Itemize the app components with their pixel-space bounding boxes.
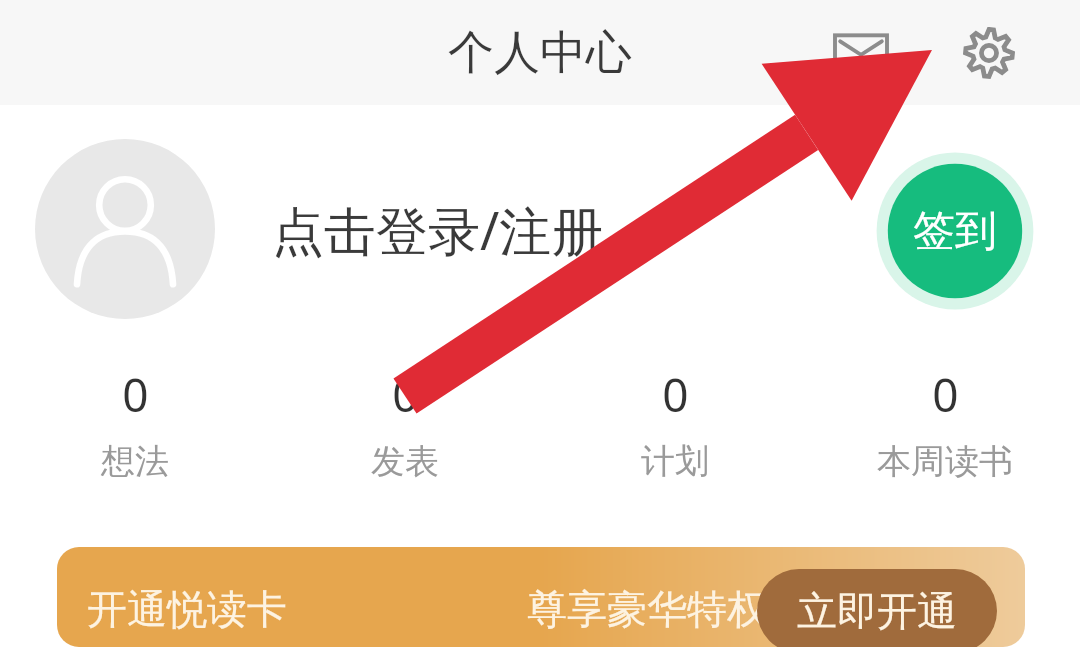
button[interactable]: 0	[270, 363, 540, 503]
button[interactable]: 0	[810, 363, 1080, 503]
staticText: 签到	[913, 205, 997, 258]
button[interactable]: Avatar	[35, 139, 215, 319]
staticText: 个人中心	[448, 24, 632, 82]
staticText: 想法	[101, 440, 169, 483]
staticText: 计划	[641, 440, 709, 483]
staticText: 立即开通	[797, 586, 957, 636]
staticText: 0	[392, 363, 419, 426]
button[interactable]: 开通悦读卡	[57, 547, 1025, 647]
staticText: 尊享豪华特权	[527, 584, 767, 634]
button[interactable]: Settings	[944, 8, 1034, 98]
staticText: 0	[932, 363, 959, 426]
staticText: 发表	[371, 440, 439, 483]
button[interactable]: 0	[0, 363, 270, 503]
button[interactable]: Messages	[818, 10, 904, 96]
button[interactable]: 签到	[875, 151, 1035, 311]
button[interactable]: 立即开通	[757, 569, 997, 647]
button[interactable]: 点击登录/注册	[272, 179, 604, 279]
button[interactable]: 0	[540, 363, 810, 503]
staticText: 0	[122, 363, 149, 426]
staticText: 点击登录/注册	[272, 194, 604, 265]
staticText: 0	[662, 363, 689, 426]
staticText: 本周读书	[877, 440, 1013, 483]
staticText: 开通悦读卡	[87, 584, 287, 634]
